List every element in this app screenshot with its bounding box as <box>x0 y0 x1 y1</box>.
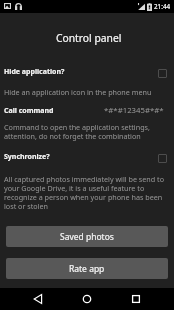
staticText: 21:44 <box>154 2 171 11</box>
button[interactable]: Hide application? <box>0 67 174 79</box>
staticText: *#*#12345#*#* <box>104 105 164 116</box>
staticText: Hide application? <box>4 67 65 77</box>
button[interactable]: Home <box>76 288 98 310</box>
staticText: Synchronize? <box>4 152 50 162</box>
button[interactable]: Rate app <box>6 258 168 279</box>
staticText: All captured photos immediately will be … <box>4 174 167 211</box>
staticText: Rate app <box>69 263 105 275</box>
button[interactable]: Synchronize? <box>0 152 174 164</box>
staticText: Control panel <box>56 31 122 45</box>
button[interactable]: Saved photos <box>6 226 168 247</box>
staticText: Saved photos <box>60 231 114 243</box>
staticText: Hide an application icon in the phone me… <box>4 87 152 97</box>
button[interactable]: Recent apps <box>125 288 147 310</box>
staticText: Command to open the application settings… <box>4 122 167 141</box>
button[interactable]: Call command <box>0 105 174 116</box>
button[interactable]: Back <box>27 288 49 310</box>
staticText: Call command <box>4 106 54 116</box>
